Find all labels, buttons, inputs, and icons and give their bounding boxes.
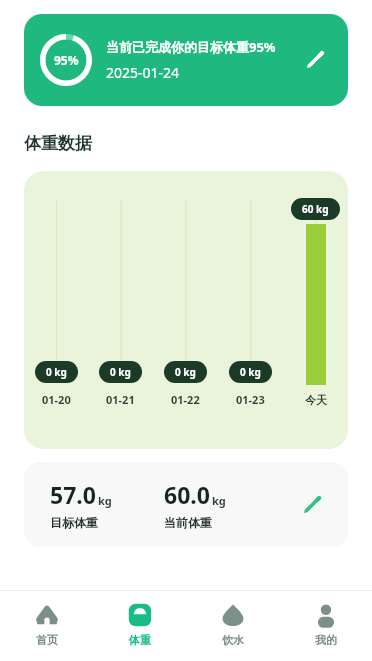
staticText: 首页 <box>36 633 58 647</box>
staticText: 95% <box>54 52 79 68</box>
staticText: 01-20 <box>42 392 71 407</box>
staticText: 今天 <box>305 393 327 407</box>
button[interactable]: Edit weight <box>290 484 332 526</box>
button[interactable]: 我的 <box>279 591 372 661</box>
staticText: kg <box>98 493 112 508</box>
button[interactable]: 95% <box>24 14 348 106</box>
staticText: 01-23 <box>236 392 265 407</box>
staticText: 当前已完成你的目标体重95% <box>106 38 276 56</box>
button[interactable]: 首页 <box>0 591 93 661</box>
staticText: 当前体重 <box>164 515 212 530</box>
staticText: 体重 <box>129 633 151 647</box>
staticText: 60 kg <box>302 202 329 216</box>
staticText: 0 kg <box>46 365 67 379</box>
staticText: kg <box>212 493 226 508</box>
staticText: 目标体重 <box>50 515 98 530</box>
staticText: 01-22 <box>171 392 200 407</box>
staticText: 2025-01-24 <box>106 63 180 82</box>
staticText: 57.0 <box>50 479 96 510</box>
staticText: 0 kg <box>240 365 261 379</box>
staticText: 我的 <box>315 633 337 647</box>
button[interactable]: 57.0 <box>24 462 348 547</box>
staticText: 0 kg <box>175 365 196 379</box>
button[interactable]: 体重 <box>93 591 186 661</box>
staticText: 0 kg <box>110 365 131 379</box>
staticText: 01-21 <box>106 392 135 407</box>
staticText: 60.0 <box>164 479 210 510</box>
button[interactable]: Edit goal <box>294 40 334 80</box>
button[interactable]: 饮水 <box>186 591 279 661</box>
staticText: 饮水 <box>222 633 244 647</box>
staticText: 体重数据 <box>24 133 92 154</box>
